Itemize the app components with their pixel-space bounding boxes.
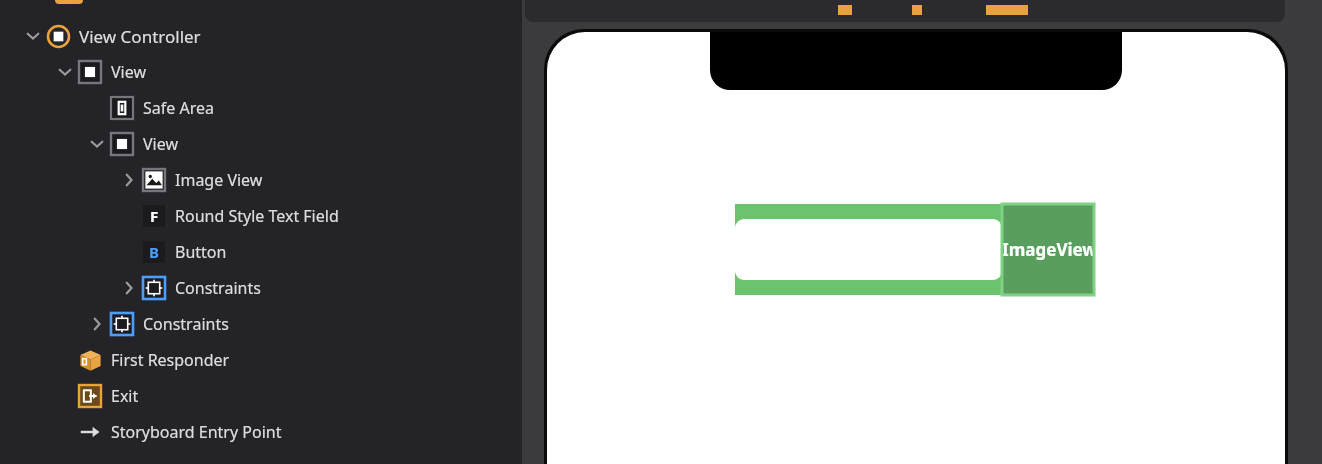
- staticText: F: [150, 206, 159, 226]
- staticText: Safe Area: [143, 97, 214, 119]
- staticText: Constraints: [175, 277, 261, 299]
- staticText: View Controller: [79, 25, 201, 48]
- staticText: Storyboard Entry Point: [111, 421, 282, 443]
- button[interactable]: B: [0, 234, 522, 270]
- button[interactable]: View: [0, 126, 522, 162]
- button[interactable]: Image View: [0, 162, 522, 198]
- staticText: View: [111, 61, 147, 83]
- button[interactable]: View: [0, 54, 522, 90]
- button[interactable]: View Controller: [0, 18, 522, 54]
- staticText: View: [143, 133, 179, 155]
- button[interactable]: F: [0, 198, 522, 234]
- staticText: Constraints: [143, 313, 229, 335]
- staticText: Image View: [175, 169, 263, 191]
- button[interactable]: [735, 219, 1002, 280]
- staticText: Exit: [111, 385, 139, 407]
- button[interactable]: Exit: [0, 378, 522, 414]
- staticText: ImageView: [1002, 238, 1094, 261]
- button[interactable]: Safe Area: [0, 90, 522, 126]
- button[interactable]: ImageView: [1002, 204, 1094, 295]
- button[interactable]: Storyboard Entry Point: [0, 414, 522, 450]
- staticText: First Responder: [111, 349, 230, 371]
- staticText: Round Style Text Field: [175, 205, 339, 227]
- staticText: B: [149, 242, 159, 262]
- button[interactable]: Constraints: [0, 306, 522, 342]
- button[interactable]: Constraints: [0, 270, 522, 306]
- staticText: Button: [175, 241, 227, 263]
- button[interactable]: First Responder: [0, 342, 522, 378]
